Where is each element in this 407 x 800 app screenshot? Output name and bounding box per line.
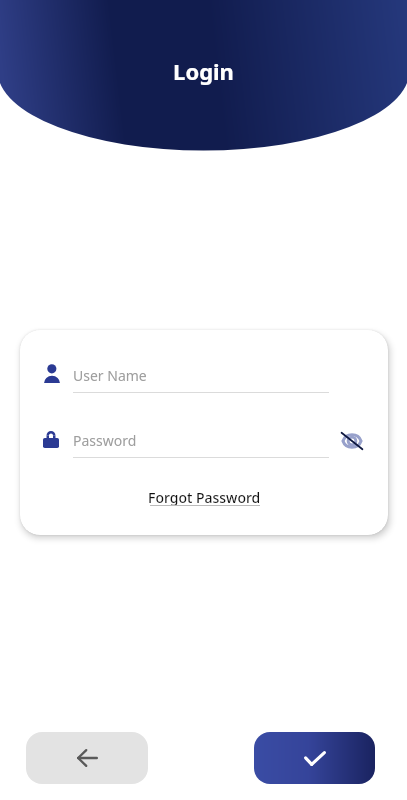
staticText: Forgot Password: [148, 488, 261, 507]
staticText: Password: [73, 431, 137, 450]
staticText: User Name: [73, 366, 147, 385]
button[interactable]: Back: [26, 732, 148, 784]
button[interactable]: Forgot Password: [148, 482, 261, 501]
button[interactable]: Show password: [330, 419, 374, 463]
staticText: Login: [0, 56, 407, 86]
button[interactable]: Confirm: [254, 732, 375, 784]
